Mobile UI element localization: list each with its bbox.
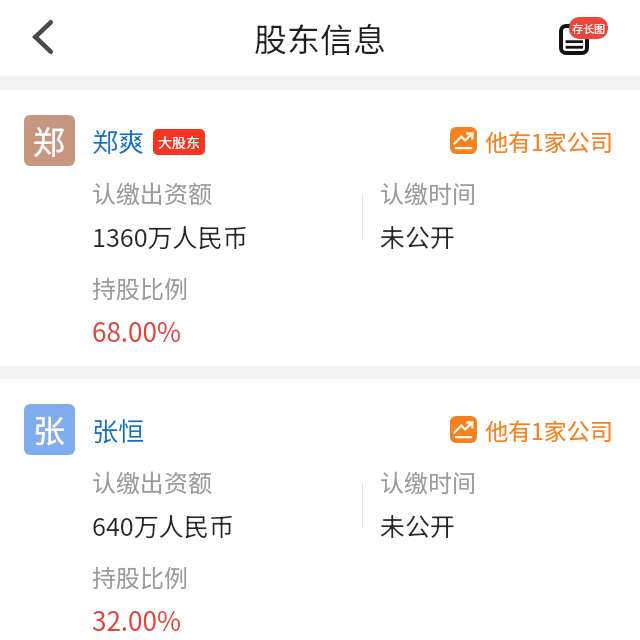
staticText: 68.00%	[92, 312, 181, 350]
staticText: 大股东	[158, 132, 200, 152]
staticText: 张恒	[92, 411, 145, 449]
staticText: 认缴时间	[380, 175, 476, 210]
staticText: 未公开	[380, 507, 456, 543]
button[interactable]: 他有1家公司	[450, 115, 613, 166]
staticText: 未公开	[380, 218, 456, 254]
staticText: 他有1家公司	[485, 124, 613, 157]
button[interactable]: 郑	[0, 90, 640, 366]
staticText: 认缴出资额	[92, 175, 212, 210]
button[interactable]: 张	[0, 379, 640, 640]
staticText: 股东信息	[254, 14, 386, 62]
staticText: 存长图	[572, 20, 605, 36]
staticText: 郑	[33, 117, 66, 163]
staticText: 认缴出资额	[92, 464, 212, 499]
staticText: 郑爽	[92, 122, 145, 160]
button[interactable]: 存长图	[552, 4, 638, 72]
staticText: 持股比例	[92, 270, 188, 305]
staticText: 他有1家公司	[485, 413, 613, 446]
staticText: 持股比例	[92, 559, 188, 594]
staticText: 张	[33, 406, 66, 452]
button[interactable]: 返回	[10, 6, 74, 70]
staticText: 640万人民币	[92, 507, 234, 543]
staticText: 32.00%	[92, 601, 181, 639]
staticText: 1360万人民币	[92, 218, 248, 254]
button[interactable]: 他有1家公司	[450, 404, 613, 455]
staticText: 认缴时间	[380, 464, 476, 499]
